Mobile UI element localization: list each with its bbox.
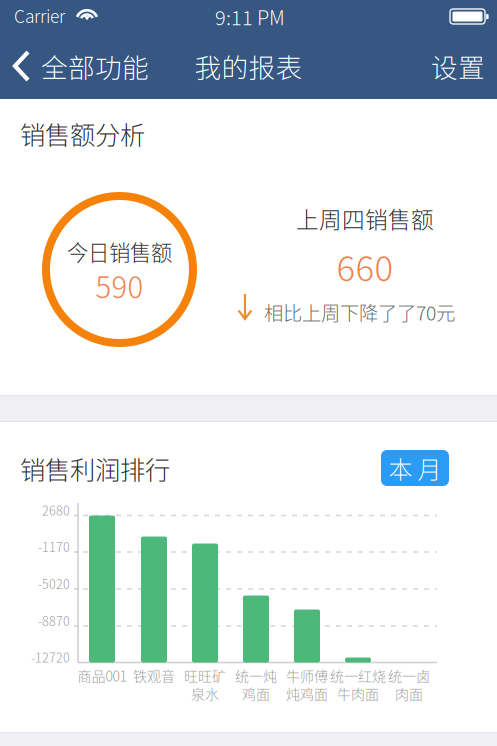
staticText: -12720: [31, 648, 70, 666]
staticText: 设置: [431, 47, 485, 85]
staticText: 铁观音: [133, 665, 175, 686]
staticText: 660: [336, 241, 393, 291]
staticText: Carrier: [14, 3, 65, 28]
staticText: 牛肉面: [337, 683, 379, 704]
staticText: 销售利润排行: [20, 450, 170, 487]
staticText: 全部功能: [41, 47, 149, 85]
staticText: 9:11 PM: [215, 2, 285, 31]
staticText: -8870: [38, 611, 70, 630]
staticText: 商品001: [77, 665, 126, 686]
staticText: 统一炖: [235, 665, 277, 686]
staticText: 2680: [42, 501, 70, 519]
staticText: 肉面: [395, 683, 423, 704]
staticText: 我的报表: [194, 47, 302, 85]
staticText: -5020: [38, 574, 70, 593]
staticText: 今日销售额: [67, 236, 172, 267]
staticText: -1170: [38, 537, 70, 556]
staticText: 590: [95, 264, 143, 307]
staticText: 本 月: [388, 451, 441, 485]
staticText: 相比上周下降了了70元: [264, 298, 455, 326]
staticText: 上周四销售额: [296, 202, 434, 235]
button[interactable]: 本 月: [381, 450, 449, 486]
button[interactable]: 设置: [419, 33, 497, 99]
staticText: 泉水: [191, 683, 219, 704]
staticText: 销售额分析: [20, 115, 145, 152]
staticText: 牛师傅: [286, 665, 328, 686]
staticText: 统一红烧: [330, 665, 386, 686]
staticText: 旺旺矿: [184, 665, 226, 686]
staticText: 统一卤: [388, 665, 430, 686]
button[interactable]: 全部功能: [0, 33, 157, 99]
staticText: 鸡面: [242, 683, 270, 704]
staticText: 炖鸡面: [286, 683, 328, 704]
